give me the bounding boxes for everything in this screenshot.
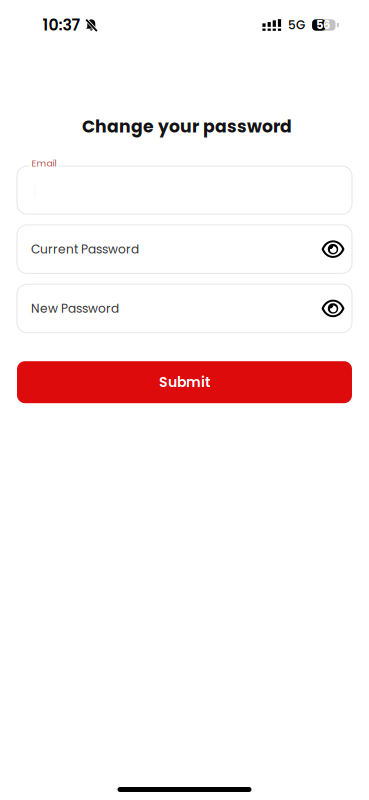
staticText: Change your password [82,114,292,139]
staticText: Current Password [31,241,139,258]
staticText: New Password [31,300,119,317]
staticText: 10:37 [42,14,80,36]
button[interactable]: Submit [17,361,352,403]
staticText: Submit [159,372,210,392]
button[interactable]: Show Current Password [315,230,351,268]
staticText: 5G [288,17,305,33]
staticText: 56 [316,17,330,33]
staticText: Email [31,157,56,170]
button[interactable]: Show New Password [315,289,351,327]
